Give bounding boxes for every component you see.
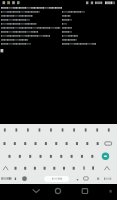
button[interactable] xyxy=(51,185,66,200)
button[interactable] xyxy=(29,185,44,200)
button[interactable] xyxy=(100,151,111,162)
button[interactable] xyxy=(0,6,117,124)
button[interactable] xyxy=(78,185,93,200)
button[interactable] xyxy=(44,176,69,182)
